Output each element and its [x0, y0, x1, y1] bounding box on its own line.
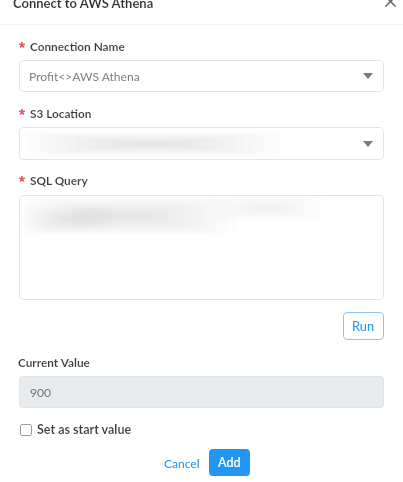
staticText: 900 [30, 385, 52, 400]
staticText: Cancel [164, 456, 200, 470]
staticText: Connect to AWS Athena [13, 0, 154, 11]
staticText: Current Value [18, 355, 90, 369]
staticText: Set as start value [37, 422, 132, 437]
staticText: S3 Location [30, 106, 92, 120]
staticText: SQL Query [30, 173, 88, 187]
button[interactable] [19, 195, 384, 300]
button[interactable]: Set as start value [20, 422, 132, 437]
staticText: Run [352, 318, 375, 333]
staticText: Add [218, 455, 241, 470]
button[interactable]: Run [343, 312, 384, 340]
button[interactable]: Profit<>AWS Athena [19, 60, 384, 92]
staticText: Connection Name [30, 39, 125, 53]
button[interactable]: Close [379, 0, 401, 12]
button[interactable]: Cancel [157, 449, 207, 476]
button[interactable] [19, 127, 384, 160]
button[interactable]: Add [209, 449, 250, 476]
staticText: Profit<>AWS Athena [29, 69, 140, 84]
